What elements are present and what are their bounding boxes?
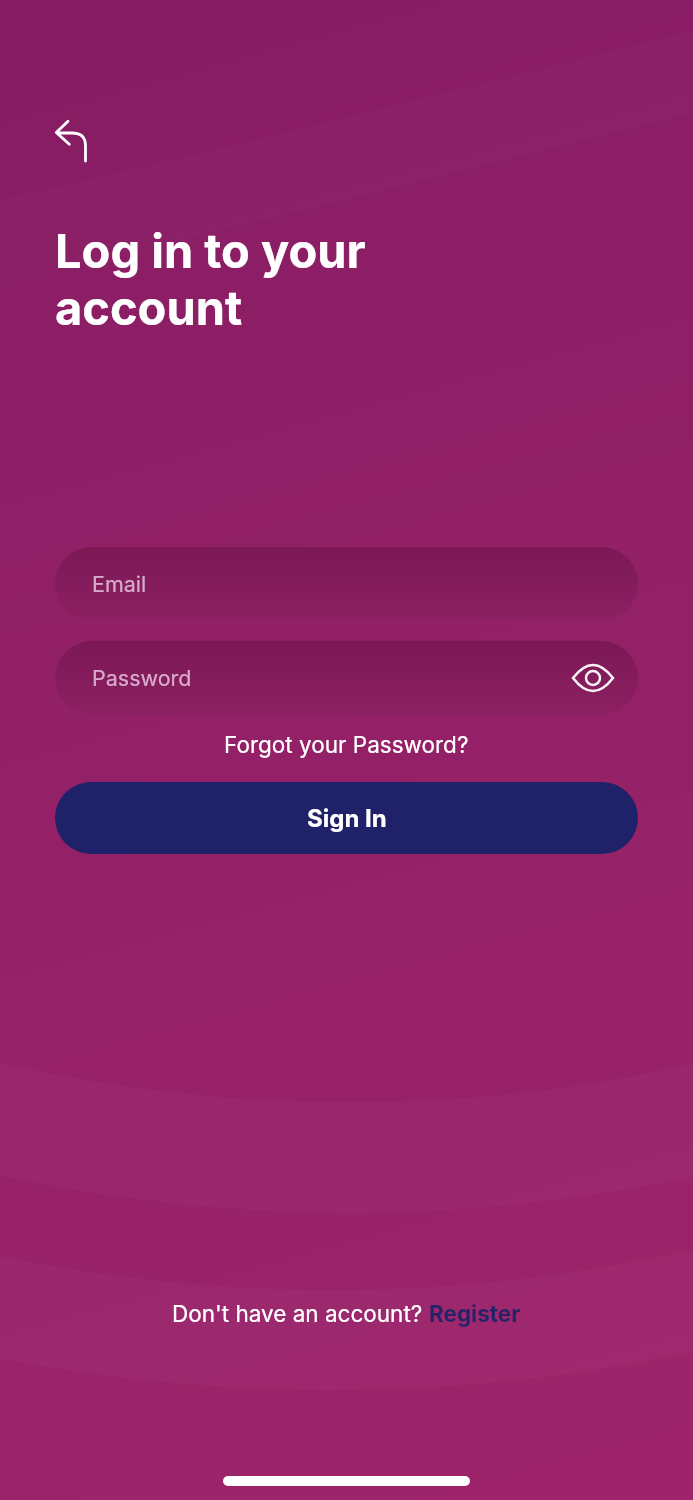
- button[interactable]: Email: [55, 547, 638, 621]
- staticText: Register: [429, 1300, 521, 1327]
- button[interactable]: Forgot your Password?: [224, 731, 469, 758]
- staticText: Email: [92, 571, 147, 597]
- button[interactable]: [40, 105, 100, 165]
- button[interactable]: Register: [429, 1300, 521, 1327]
- button[interactable]: Password: [55, 641, 638, 715]
- button[interactable]: Sign In: [55, 782, 638, 854]
- staticText: Don't have an account?: [172, 1300, 429, 1327]
- staticText: Log in to your account: [55, 222, 366, 336]
- staticText: Password: [92, 665, 192, 691]
- staticText: Forgot your Password?: [224, 731, 469, 758]
- staticText: Sign In: [307, 804, 387, 833]
